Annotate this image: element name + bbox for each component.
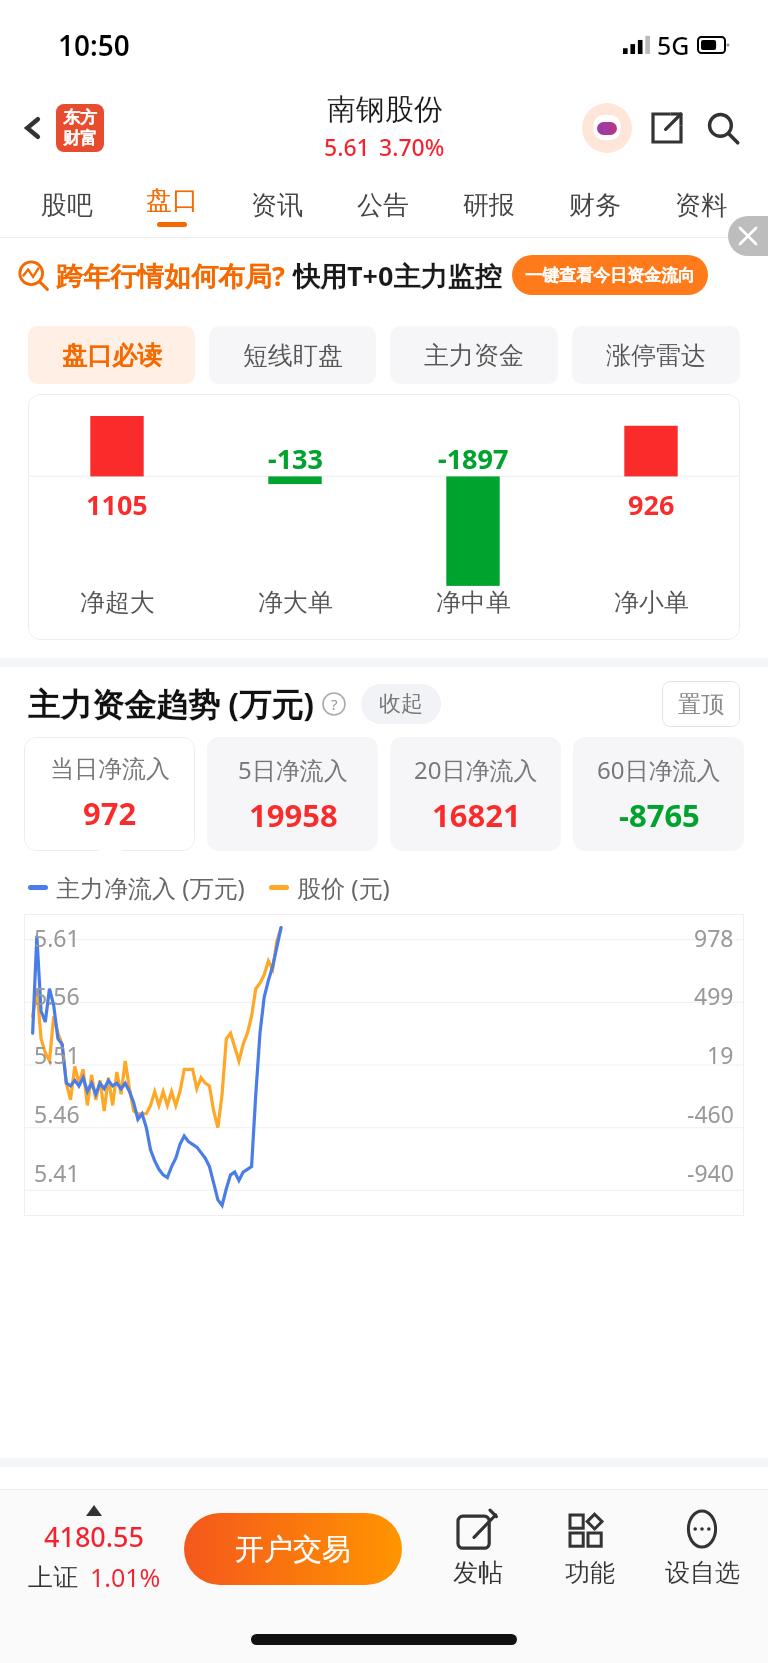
staticText: 1105 (86, 486, 148, 523)
staticText: 盘口必读 (62, 340, 162, 371)
button[interactable]: 主力资金 (390, 326, 558, 384)
staticText: 财富 (63, 128, 97, 149)
button[interactable]: 盘口 (119, 172, 224, 238)
button[interactable]: 盘口必读 (28, 326, 195, 384)
button[interactable]: 资料 (648, 172, 754, 238)
button[interactable]: 当日净流入 (24, 737, 195, 851)
button[interactable]: 资讯 (224, 172, 330, 238)
staticText: 置顶 (678, 690, 724, 719)
staticText: 5.41 (34, 1157, 80, 1188)
button[interactable]: 5日净流入 (207, 737, 378, 851)
staticText: 收起 (379, 690, 423, 718)
button[interactable]: 收起 (379, 684, 423, 724)
button[interactable]: 研报 (436, 172, 542, 238)
staticText: 主力净流入 (万元) (56, 871, 245, 904)
staticText: 净中单 (436, 587, 511, 618)
staticText: 20日净流入 (414, 753, 538, 786)
staticText: 快用T+0主力监控 (293, 257, 502, 294)
button[interactable]: 置顶 (678, 681, 724, 727)
staticText: 财务 (569, 189, 621, 222)
staticText: 3.70% (379, 131, 445, 162)
button[interactable]: 财务 (542, 172, 648, 238)
button[interactable]: 跨年行情如何布局? (18, 238, 754, 312)
button[interactable]: 4180.55 (10, 1505, 178, 1594)
staticText: 16821 (432, 794, 521, 836)
button[interactable]: Close (728, 216, 768, 256)
staticText: 发帖 (453, 1557, 503, 1588)
button[interactable]: 一键查看今日资金流向 (525, 255, 695, 295)
staticText: 南钢股份 (327, 91, 443, 128)
staticText: 涨停雷达 (606, 340, 706, 371)
staticText: 10:50 (58, 26, 130, 64)
staticText: 5.46 (34, 1098, 80, 1129)
staticText: 东方 (63, 107, 97, 128)
button[interactable]: 功能 (534, 1511, 646, 1588)
staticText: 19 (707, 1039, 734, 1070)
staticText: 股吧 (41, 189, 93, 222)
button[interactable]: Help (321, 691, 347, 717)
staticText: 4180.55 (44, 1518, 145, 1555)
staticText: 研报 (463, 189, 515, 222)
staticText: 功能 (565, 1557, 615, 1588)
staticText: 5.56 (34, 980, 80, 1011)
staticText: 短线盯盘 (243, 340, 343, 371)
staticText: 股价 (元) (297, 871, 390, 904)
staticText: 开户交易 (235, 1531, 351, 1568)
button[interactable]: 设自选 (646, 1511, 758, 1588)
staticText: 5.61 (34, 922, 80, 953)
staticText: 19958 (249, 794, 338, 836)
button[interactable]: Search (696, 101, 750, 155)
button[interactable]: 股吧 (14, 172, 119, 238)
button[interactable]: Back (10, 105, 56, 151)
staticText: 972 (83, 792, 137, 834)
staticText: -8765 (619, 794, 700, 836)
staticText: 5.51 (34, 1039, 80, 1070)
staticText: -1897 (438, 440, 509, 477)
staticText: 5日净流入 (238, 753, 348, 786)
button[interactable]: 公告 (330, 172, 436, 238)
staticText: 上证 (28, 1562, 78, 1593)
button[interactable]: Eastmoney (56, 104, 104, 152)
staticText: 公告 (357, 189, 409, 222)
staticText: -940 (687, 1157, 734, 1188)
staticText: 当日净流入 (50, 754, 170, 784)
staticText: 499 (694, 980, 734, 1011)
staticText: 5.61 (324, 131, 370, 162)
button[interactable]: 短线盯盘 (209, 326, 376, 384)
button[interactable]: 1105 (28, 394, 740, 640)
button[interactable]: Share (640, 101, 694, 155)
staticText: -133 (268, 440, 323, 477)
staticText: 净大单 (258, 587, 333, 618)
button[interactable]: 涨停雷达 (572, 326, 740, 384)
button[interactable]: 60日净流入 (573, 737, 744, 851)
staticText: 资料 (675, 189, 727, 222)
staticText: 978 (694, 922, 734, 953)
staticText: 1.01% (90, 1560, 161, 1594)
staticText: 跨年行情如何布局? (56, 257, 285, 294)
staticText: 盘口 (146, 184, 198, 217)
staticText: -460 (687, 1098, 734, 1129)
button[interactable]: 20日净流入 (390, 737, 561, 851)
button[interactable]: 发帖 (422, 1511, 534, 1588)
staticText: ? (331, 694, 338, 714)
staticText: 资讯 (251, 189, 303, 222)
button[interactable]: AI Assistant (580, 101, 634, 155)
staticText: 主力资金趋势 (万元) (28, 682, 315, 726)
staticText: 60日净流入 (597, 753, 721, 786)
staticText: 主力资金 (424, 340, 524, 371)
staticText: 一键查看今日资金流向 (525, 265, 695, 286)
staticText: 926 (628, 486, 675, 523)
staticText: 设自选 (665, 1557, 740, 1588)
button[interactable]: 开户交易 (184, 1513, 402, 1585)
staticText: 净小单 (614, 587, 689, 618)
staticText: 5G (657, 28, 690, 62)
staticText: 净超大 (80, 587, 155, 618)
